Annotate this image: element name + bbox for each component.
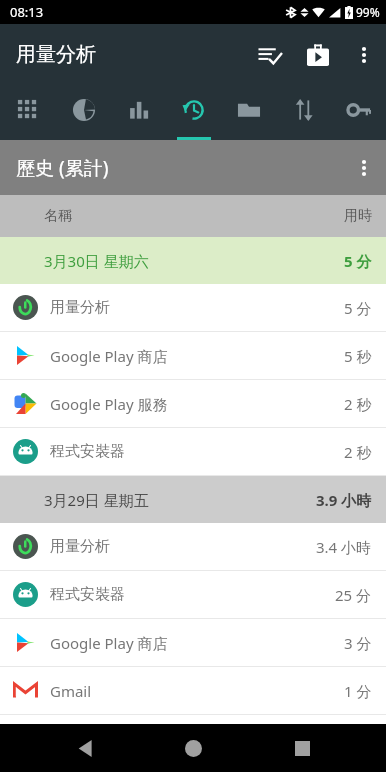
button[interactable]: Google Play 商店 <box>0 332 386 380</box>
staticText: 用時 <box>344 207 372 225</box>
button[interactable]: 3月29日 星期五 <box>0 476 386 523</box>
button[interactable]: Transfer <box>276 85 331 140</box>
staticText: 用量分析 <box>16 42 96 67</box>
button[interactable]: Google Play 服務 <box>0 380 386 428</box>
button[interactable]: 3月30日 星期六 <box>0 237 386 284</box>
staticText: 名稱 <box>44 207 72 225</box>
button[interactable]: 程式安裝器 <box>0 571 386 619</box>
button[interactable]: Pie chart <box>56 85 111 140</box>
button[interactable]: Select all <box>246 31 294 79</box>
button[interactable]: Folder <box>221 85 276 140</box>
staticText: 5 秒 <box>344 346 372 366</box>
staticText: Google Play 商店 <box>50 346 344 366</box>
button[interactable]: Apps <box>0 85 56 140</box>
button[interactable]: 用量分析 <box>0 523 386 571</box>
staticText: 歷史 (累計) <box>16 155 109 181</box>
button[interactable]: Gmail <box>0 667 386 715</box>
staticText: 3.9 小時 <box>316 490 372 510</box>
button[interactable]: 用量分析 <box>0 284 386 332</box>
staticText: Google Play 商店 <box>50 633 344 653</box>
staticText: 程式安裝器 <box>50 442 344 461</box>
staticText: 2 秒 <box>344 442 372 462</box>
staticText: 3月30日 星期六 <box>44 251 149 271</box>
button[interactable]: Home <box>169 724 217 772</box>
staticText: 3月29日 星期五 <box>44 490 149 510</box>
staticText: 用量分析 <box>50 537 316 556</box>
button[interactable]: Bar chart <box>111 85 166 140</box>
button[interactable]: Back <box>61 724 109 772</box>
staticText: 5 分 <box>344 251 372 271</box>
staticText: Gmail <box>50 681 344 701</box>
button[interactable]: More options <box>342 33 386 77</box>
staticText: 3.4 小時 <box>316 537 372 557</box>
staticText: 25 分 <box>335 585 372 605</box>
staticText: Google Play 服務 <box>50 394 344 414</box>
staticText: 08:13 <box>10 3 44 21</box>
button[interactable]: Recents <box>278 724 326 772</box>
staticText: 1 分 <box>344 681 372 701</box>
staticText: 3 分 <box>344 633 372 653</box>
staticText: 用量分析 <box>50 298 344 317</box>
button[interactable]: 歷史 (累計) <box>0 140 386 195</box>
staticText: 程式安裝器 <box>50 585 335 604</box>
staticText: 99% <box>356 4 380 20</box>
button[interactable]: 程式安裝器 <box>0 428 386 476</box>
button[interactable]: Play store <box>294 31 342 79</box>
button[interactable]: Google Play 商店 <box>0 619 386 667</box>
button[interactable]: History options <box>342 146 386 190</box>
staticText: 5 分 <box>344 298 372 318</box>
staticText: 2 秒 <box>344 394 372 414</box>
button[interactable]: History <box>166 85 221 140</box>
button[interactable]: Key <box>331 85 386 140</box>
